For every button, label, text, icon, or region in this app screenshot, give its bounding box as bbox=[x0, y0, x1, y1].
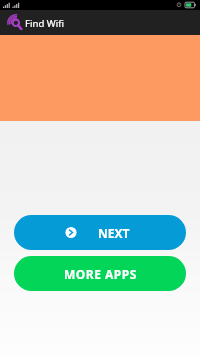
staticText: Find Wifi bbox=[25, 17, 64, 30]
button[interactable]: NEXT bbox=[14, 215, 186, 250]
staticText: MORE APPS bbox=[64, 266, 137, 282]
staticText: NEXT bbox=[98, 225, 130, 241]
button[interactable]: MORE APPS bbox=[14, 256, 186, 291]
